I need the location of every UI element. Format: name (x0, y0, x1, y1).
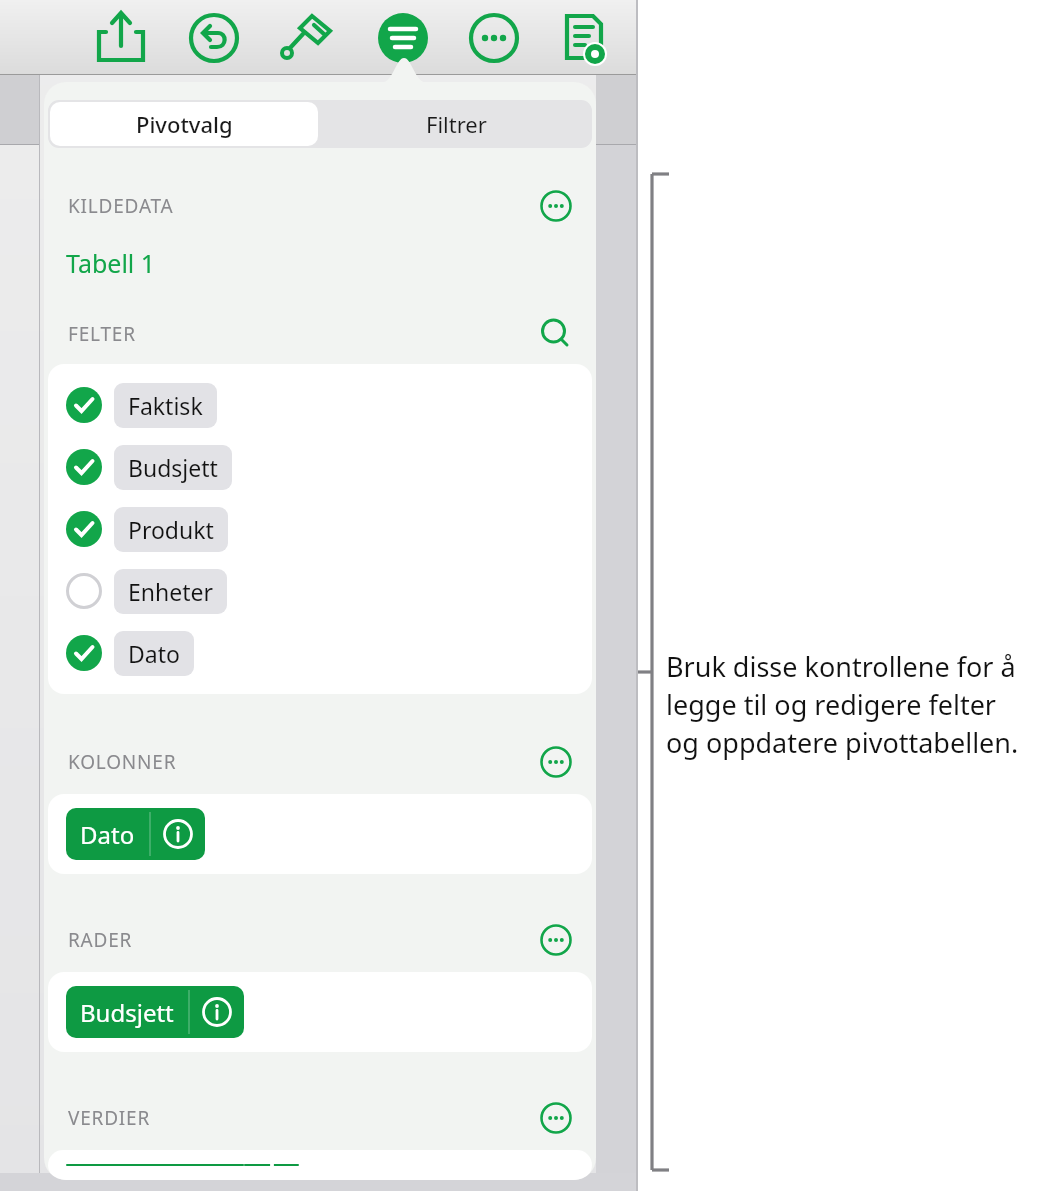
button[interactable]: Faktisk (48, 374, 592, 436)
button[interactable]: Faktisk (Sum) (66, 1164, 299, 1166)
button[interactable]: More (466, 10, 522, 66)
staticText: RADER (68, 927, 133, 953)
button[interactable]: More options (534, 184, 578, 228)
button[interactable]: Share (93, 10, 149, 66)
button[interactable]: Pivotvalg (50, 102, 318, 146)
button[interactable]: Dato (66, 808, 205, 860)
button[interactable]: Document (555, 10, 611, 66)
button[interactable]: Produkt (48, 498, 592, 560)
staticText: Enheter (128, 576, 213, 607)
button[interactable]: Info Budsjett (190, 986, 244, 1038)
staticText: KILDEDATA (68, 193, 174, 219)
button[interactable]: Tabell 1 (66, 246, 156, 280)
button[interactable]: Dato (48, 622, 592, 684)
button[interactable]: Budsjett (66, 986, 244, 1038)
button[interactable]: Organize (375, 10, 431, 66)
staticText: Faktisk (128, 390, 203, 421)
staticText: Produkt (128, 514, 214, 545)
button[interactable]: Search (534, 312, 578, 356)
button[interactable]: More options (534, 740, 578, 784)
button[interactable]: Enheter (48, 560, 592, 622)
staticText: Budsjett (80, 996, 174, 1029)
staticText: VERDIER (68, 1105, 151, 1131)
staticText: Bruk disse kontrollene for å legge til o… (666, 648, 1038, 761)
staticText: Dato (128, 638, 180, 669)
button[interactable]: Filtrer (320, 100, 592, 148)
staticText: Budsjett (128, 452, 218, 483)
staticText: Filtrer (426, 109, 487, 139)
staticText: FELTER (68, 321, 136, 347)
button[interactable]: More options (534, 918, 578, 962)
staticText: KOLONNER (68, 749, 177, 775)
button[interactable]: Format (280, 10, 336, 66)
button[interactable]: Undo (186, 10, 242, 66)
button[interactable]: More options (534, 1096, 578, 1140)
staticText: Pivotvalg (136, 109, 233, 139)
button[interactable]: Info Dato (151, 808, 205, 860)
staticText: Dato (80, 818, 135, 851)
button[interactable]: Budsjett (48, 436, 592, 498)
button[interactable]: Info Faktisk (Sum) (245, 1164, 299, 1166)
